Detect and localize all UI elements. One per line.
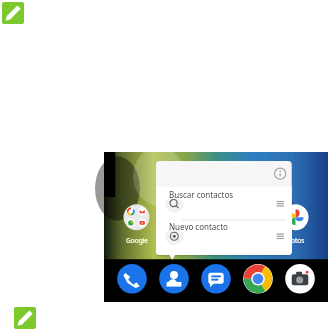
- staticText: Google: [121, 236, 153, 246]
- button[interactable]: Google: [104, 152, 328, 302]
- staticText: Buscar contactos: [169, 189, 234, 200]
- button[interactable]: Edit: [14, 307, 36, 329]
- staticText: Nuevo contacto: [169, 221, 228, 232]
- staticText: Fotos: [280, 236, 312, 246]
- button[interactable]: Edit: [2, 2, 24, 24]
